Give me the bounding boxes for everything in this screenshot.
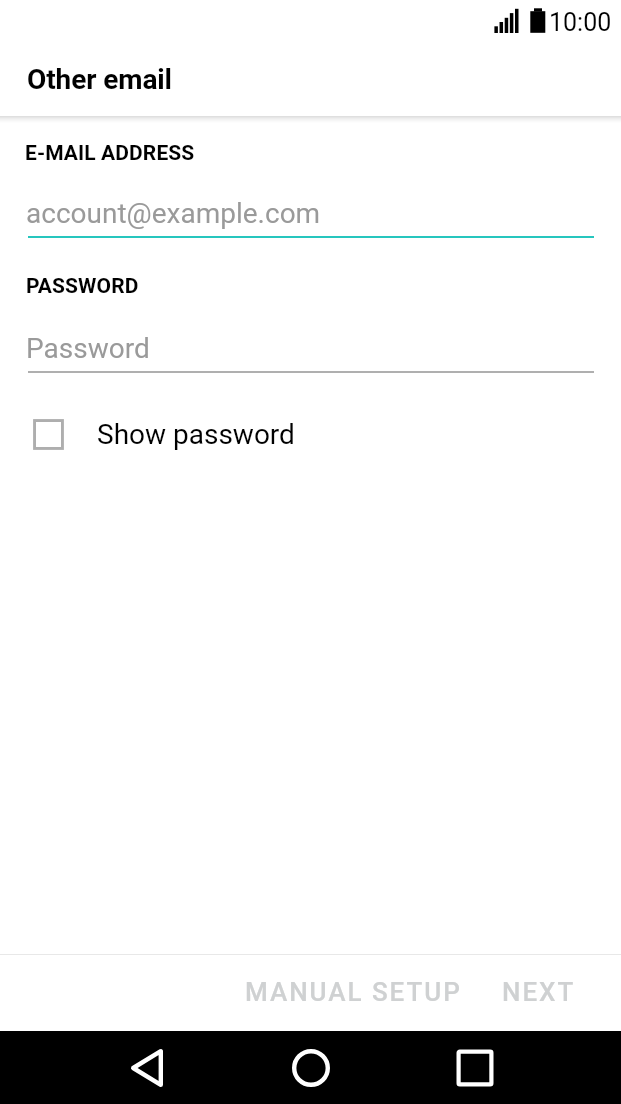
button[interactable]: MANUAL SETUP	[229, 965, 477, 1017]
button[interactable]: account@example.com	[28, 176, 594, 238]
staticText: E-MAIL ADDRESS	[25, 141, 195, 166]
staticText: PASSWORD	[26, 274, 139, 299]
button[interactable]: Recent apps	[431, 1031, 518, 1104]
button[interactable]: Password	[28, 309, 594, 372]
button[interactable]: Home	[267, 1031, 354, 1104]
staticText: Show password	[97, 418, 295, 451]
staticText: Password	[26, 332, 150, 365]
button[interactable]: Back	[103, 1031, 190, 1104]
staticText: Other email	[27, 63, 172, 96]
button[interactable]: NEXT	[486, 965, 590, 1017]
staticText: MANUAL SETUP	[245, 977, 462, 1007]
staticText: NEXT	[502, 977, 576, 1007]
button[interactable]: Show password	[0, 405, 621, 463]
staticText: 10:00	[549, 8, 612, 37]
staticText: account@example.com	[26, 197, 321, 230]
